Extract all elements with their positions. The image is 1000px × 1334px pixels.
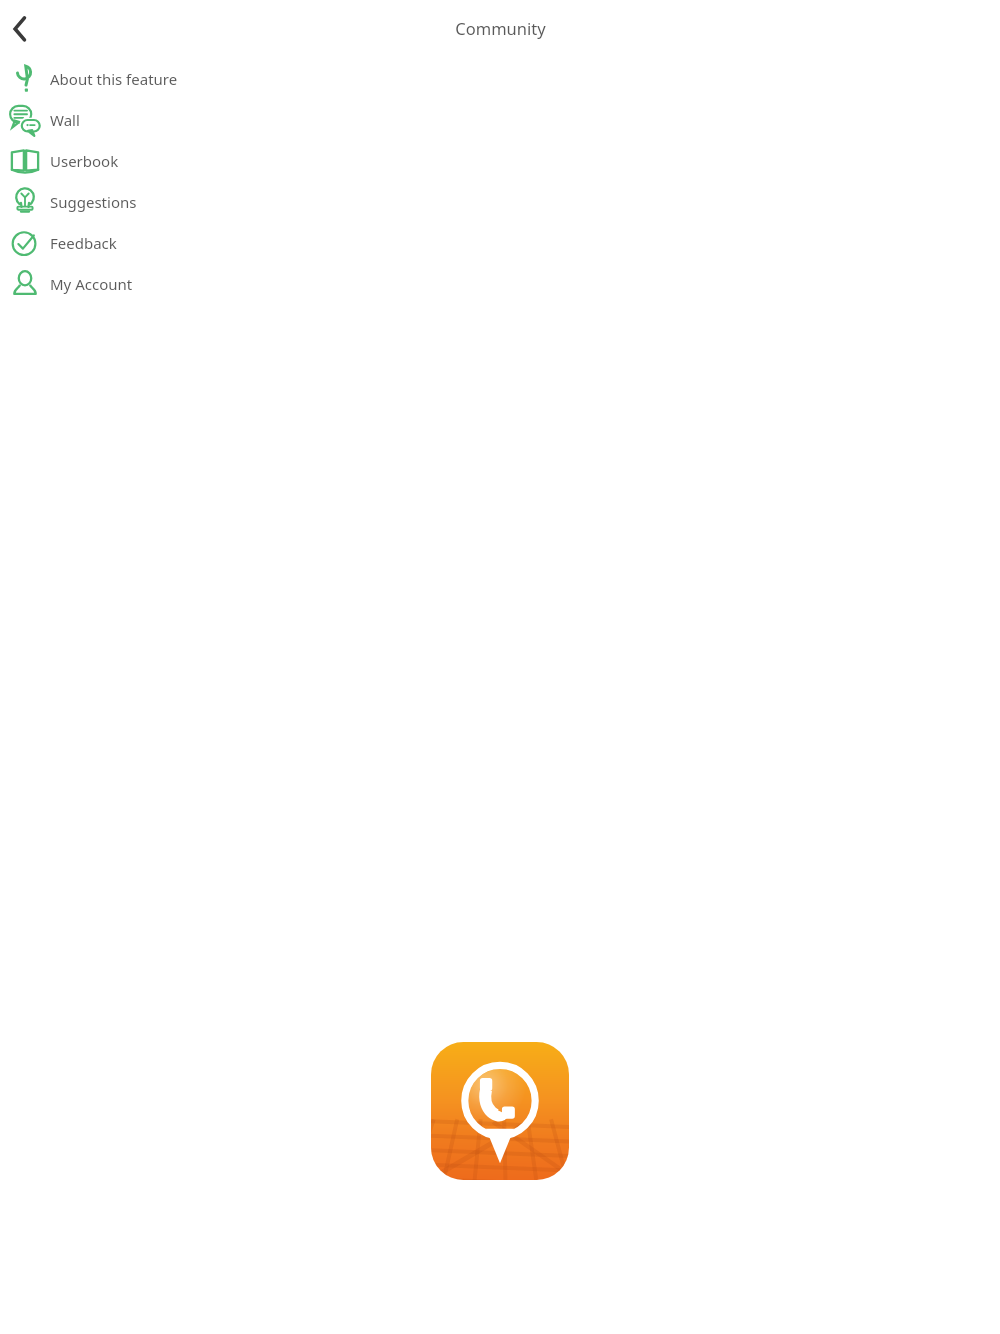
button[interactable]: Feedback xyxy=(0,222,1000,263)
staticText: Userbook xyxy=(50,151,119,171)
staticText: Community xyxy=(455,17,546,39)
button[interactable]: My Account xyxy=(0,263,1000,304)
staticText: Feedback xyxy=(50,233,117,253)
staticText: About this feature xyxy=(50,69,178,89)
button[interactable]: Suggestions xyxy=(0,181,1000,222)
button[interactable]: Userbook xyxy=(0,140,1000,181)
button[interactable]: Back xyxy=(0,5,46,51)
staticText: Wall xyxy=(50,110,80,130)
staticText: Suggestions xyxy=(50,192,137,212)
button[interactable]: About this feature xyxy=(0,58,1000,99)
staticText: My Account xyxy=(50,274,133,294)
button[interactable]: Wall xyxy=(0,99,1000,140)
